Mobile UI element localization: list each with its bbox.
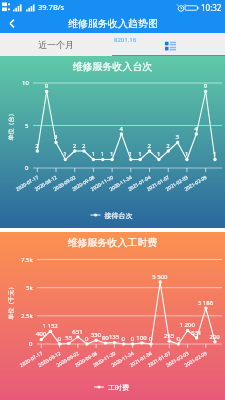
staticText: 39.7B/s — [38, 2, 65, 12]
button[interactable]: 8201.16 — [112, 33, 225, 56]
staticText: 10:32 — [201, 2, 222, 13]
staticText: 维修服务收入趋势图 — [68, 17, 158, 30]
staticText: 近一个月 — [38, 39, 74, 50]
button[interactable]: Back — [0, 14, 19, 33]
staticText: 8201.16 — [114, 36, 137, 44]
button[interactable]: 近一个月 — [0, 33, 112, 56]
